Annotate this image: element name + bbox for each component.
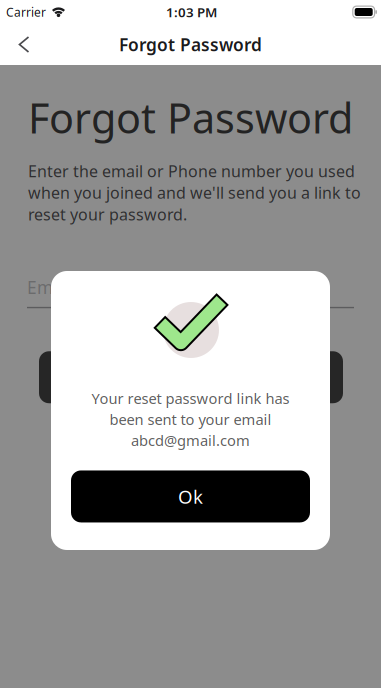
staticText: Enter the email or Phone number you used — [28, 160, 355, 182]
staticText: Carrier — [6, 4, 46, 20]
staticText: reset your password. — [28, 204, 187, 225]
staticText: Email — [27, 276, 71, 299]
button[interactable]: Send — [39, 351, 343, 403]
staticText: 1:03 PM — [166, 3, 217, 21]
staticText: been sent to your email — [109, 409, 271, 429]
staticText: abcd@gmail.com — [131, 430, 250, 450]
staticText: Forgot Password — [28, 90, 353, 145]
button[interactable]: Back — [0, 25, 48, 63]
staticText: when you joined and we'll send you a lin… — [28, 182, 361, 203]
staticText: Your reset password link has — [91, 388, 289, 408]
staticText: Forgot Password — [119, 33, 262, 56]
staticText: Ok — [178, 484, 203, 509]
button[interactable]: Ok — [71, 470, 310, 522]
